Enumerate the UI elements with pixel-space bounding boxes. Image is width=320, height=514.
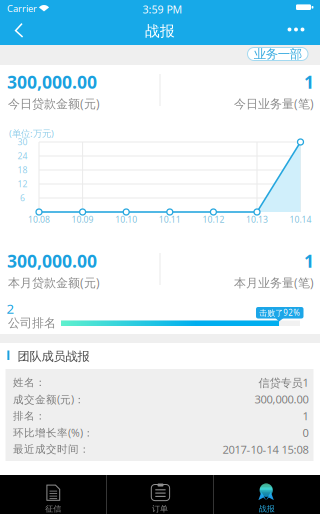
staticText: 0: [302, 425, 308, 440]
staticText: 2: [6, 299, 14, 318]
staticText: 10.12: [202, 214, 224, 225]
staticText: 排名：: [13, 409, 46, 423]
staticText: 24: [17, 150, 27, 162]
staticText: 10.11: [159, 214, 181, 225]
staticText: 团队成员战报: [17, 349, 89, 364]
staticText: 18: [17, 164, 27, 176]
button[interactable]: 订单: [0, 0, 320, 514]
staticText: 10.09: [72, 214, 94, 225]
staticText: (单位:万元): [9, 127, 54, 140]
staticText: 300,000.00: [254, 392, 308, 407]
staticText: 300,000.00: [7, 70, 97, 94]
button[interactable]: 征信: [0, 0, 320, 514]
staticText: 本月贷款金额(元): [8, 274, 100, 291]
button[interactable]: Back: [6, 20, 34, 42]
staticText: 业务一部: [254, 46, 302, 62]
staticText: 订单: [152, 504, 168, 514]
staticText: Carrier: [7, 2, 37, 15]
staticText: 成交金额(元)：: [13, 392, 85, 406]
staticText: 战报: [145, 22, 175, 40]
staticText: 6: [20, 192, 25, 204]
staticText: 环比增长率(%)：: [13, 425, 94, 440]
button[interactable]: More options: [281, 21, 311, 38]
staticText: 战报: [259, 504, 275, 514]
staticText: 12: [17, 178, 27, 190]
staticText: 10.08: [28, 214, 50, 225]
staticText: 10.13: [246, 214, 268, 225]
staticText: 本月业务量(笔): [234, 274, 314, 291]
staticText: 30: [17, 136, 27, 148]
staticText: 1: [302, 408, 308, 424]
staticText: 今日业务量(笔): [234, 95, 314, 112]
button[interactable]: 业务一部: [247, 47, 308, 60]
staticText: 公司排名: [8, 315, 56, 330]
staticText: 击败了92%: [259, 307, 300, 318]
staticText: 300,000.00: [7, 249, 97, 273]
staticText: 3:59 PM: [142, 2, 182, 16]
staticText: 10.10: [115, 214, 137, 225]
staticText: 1: [304, 249, 314, 273]
staticText: 信贷专员1: [258, 375, 308, 390]
staticText: 10.14: [289, 214, 311, 225]
button[interactable]: 战报: [0, 0, 320, 514]
staticText: 最近成交时间：: [13, 443, 90, 456]
staticText: 2017-10-14 15:08: [222, 442, 308, 457]
staticText: 1: [304, 70, 314, 94]
staticText: 姓名：: [13, 376, 46, 389]
staticText: 征信: [45, 504, 61, 514]
staticText: 今日贷款金额(元): [8, 95, 100, 112]
